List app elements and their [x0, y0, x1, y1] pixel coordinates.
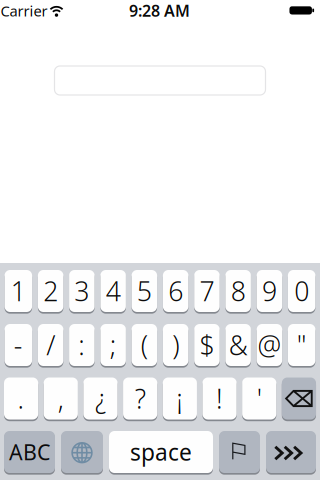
button[interactable]: ¡ — [163, 377, 197, 419]
button[interactable]: 5 — [132, 270, 157, 312]
staticText: ( — [141, 327, 148, 363]
staticText: ' — [257, 381, 262, 416]
staticText: 5 — [137, 273, 152, 309]
button[interactable]: Text field — [54, 66, 265, 95]
staticText: ¡ — [176, 381, 183, 416]
button[interactable]: , — [44, 377, 78, 419]
staticText: ; — [110, 327, 117, 363]
button[interactable]: : — [69, 324, 95, 366]
button[interactable]: / — [38, 324, 63, 366]
button[interactable]: 8 — [225, 270, 251, 312]
button[interactable]: ¿ — [83, 377, 118, 419]
button[interactable]: 6 — [163, 270, 188, 312]
button[interactable]: & — [225, 324, 251, 366]
button[interactable]: ' — [242, 377, 276, 419]
staticText: 2 — [43, 273, 58, 309]
button[interactable]: $ — [194, 324, 220, 366]
button[interactable]: Next keyboard — [61, 431, 103, 473]
staticText: ? — [135, 381, 146, 416]
staticText: @ — [257, 327, 281, 363]
staticText: ABC — [9, 438, 50, 466]
button[interactable]: ; — [100, 324, 126, 366]
staticText: 7 — [199, 273, 214, 309]
staticText: 1 — [11, 273, 26, 309]
button[interactable]: 7 — [194, 270, 220, 312]
staticText: 6 — [168, 273, 183, 309]
staticText: , — [58, 381, 64, 416]
staticText: ¿ — [95, 381, 106, 416]
button[interactable]: 9 — [257, 270, 282, 312]
staticText: 4 — [106, 273, 121, 309]
staticText: : — [78, 327, 85, 363]
staticText: & — [229, 327, 248, 363]
staticText: Carrier — [0, 1, 47, 21]
staticText: ) — [172, 327, 179, 363]
staticText: 3 — [74, 273, 89, 309]
staticText: / — [46, 327, 55, 363]
button[interactable]: - — [5, 324, 32, 366]
button[interactable]: Forward — [266, 431, 316, 473]
button[interactable]: ) — [163, 324, 188, 366]
button[interactable]: " — [288, 324, 315, 366]
staticText: 9:28 AM — [129, 0, 190, 21]
button[interactable]: 0 — [288, 270, 315, 312]
staticText: 0 — [294, 273, 309, 309]
staticText: ! — [216, 381, 223, 416]
button[interactable]: Flag — [219, 431, 260, 473]
staticText: 9 — [262, 273, 277, 309]
button[interactable]: ? — [123, 377, 157, 419]
button[interactable]: @ — [257, 324, 282, 366]
button[interactable]: ! — [202, 377, 237, 419]
staticText: $ — [199, 327, 214, 363]
button[interactable]: 2 — [38, 270, 63, 312]
staticText: 8 — [231, 273, 246, 309]
button[interactable]: . — [4, 377, 38, 419]
staticText: " — [297, 327, 307, 363]
button[interactable]: 1 — [5, 270, 32, 312]
button[interactable]: 4 — [100, 270, 126, 312]
button[interactable]: space — [109, 431, 213, 473]
button[interactable]: ABC — [4, 431, 55, 473]
button[interactable]: Delete — [282, 377, 316, 419]
button[interactable]: 3 — [69, 270, 95, 312]
staticText: - — [14, 327, 23, 363]
button[interactable]: ( — [132, 324, 157, 366]
staticText: . — [18, 381, 25, 416]
staticText: space — [130, 437, 192, 467]
